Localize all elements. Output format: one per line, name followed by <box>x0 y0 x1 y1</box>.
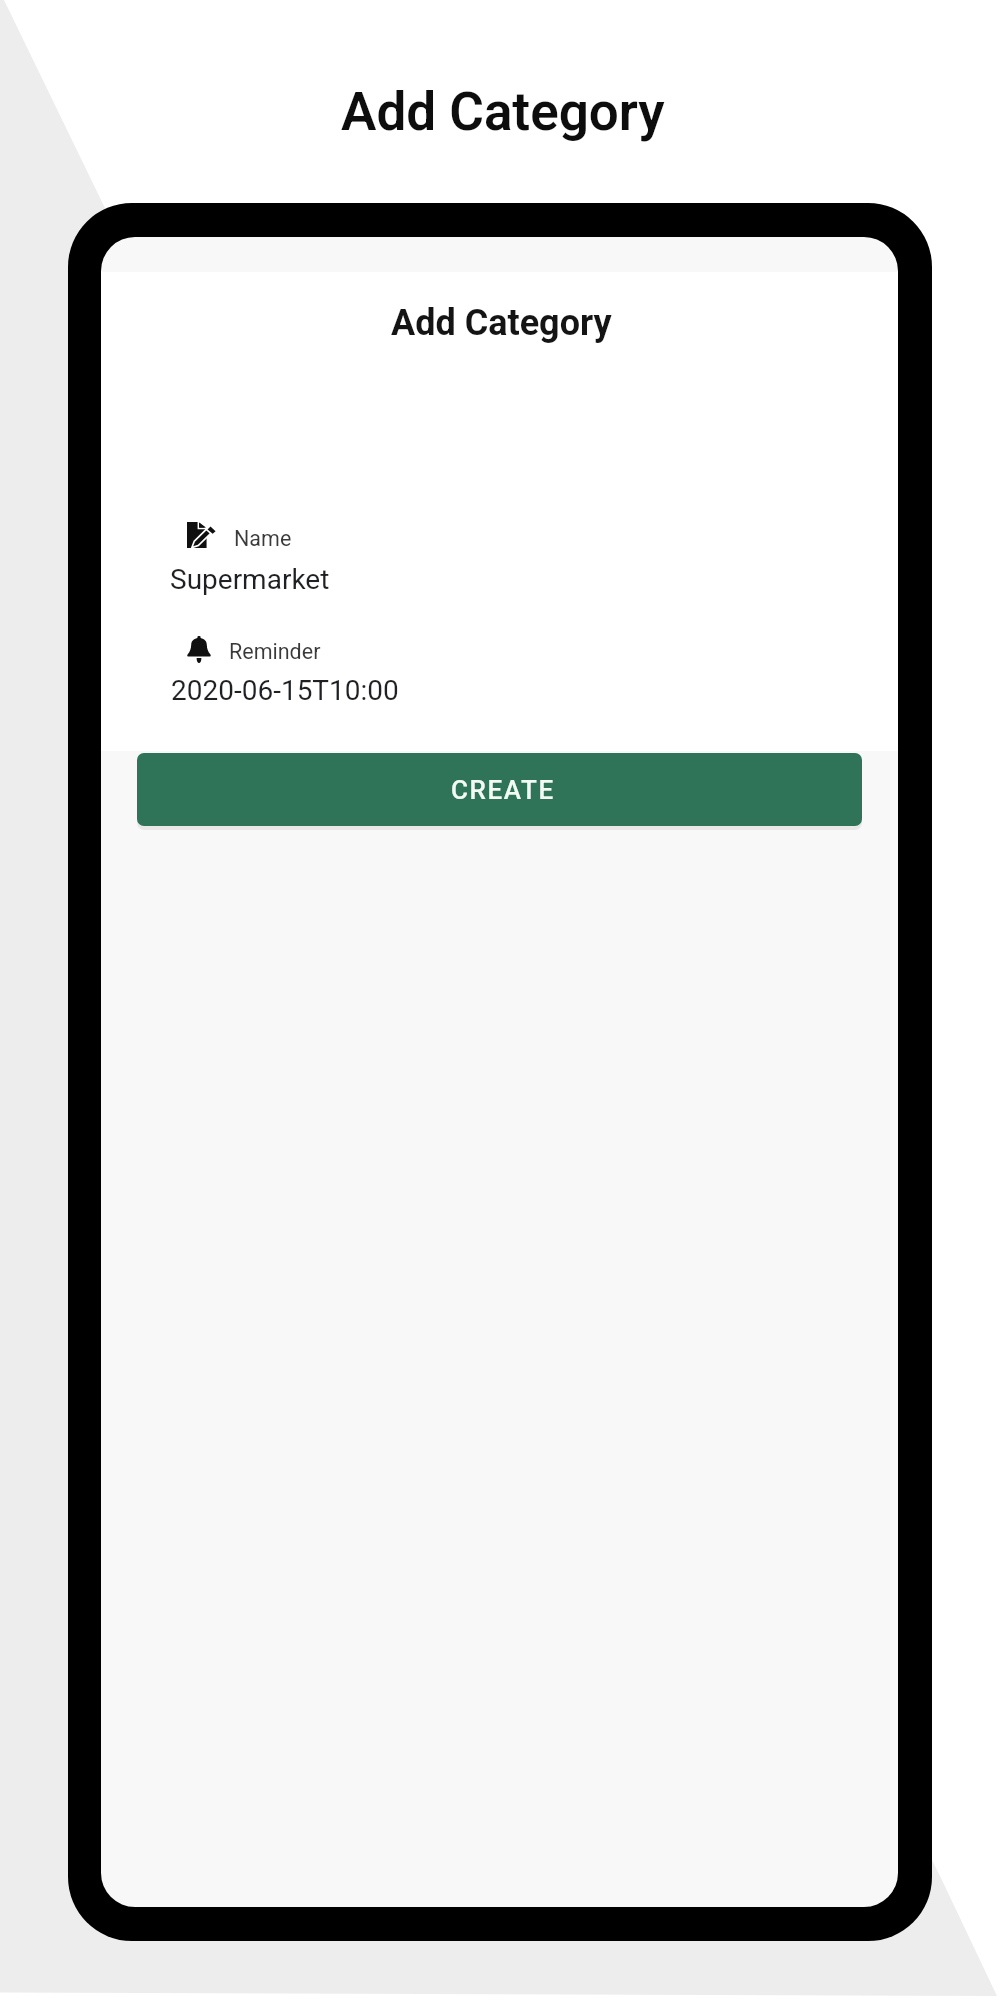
staticText: CREATE <box>451 775 555 805</box>
button[interactable]: CREATE <box>137 753 862 826</box>
staticText: Reminder <box>229 639 321 664</box>
other: Edit name <box>187 522 216 548</box>
button[interactable]: Reminder <box>170 629 828 715</box>
staticText: Name <box>234 526 292 551</box>
button[interactable]: Edit name <box>170 515 828 601</box>
other: Reminder <box>187 636 211 663</box>
staticText: Supermarket <box>170 563 330 596</box>
staticText: 2020-06-15T10:00 <box>171 674 399 707</box>
staticText: Add Category <box>341 81 665 143</box>
staticText: Add Category <box>391 302 612 344</box>
